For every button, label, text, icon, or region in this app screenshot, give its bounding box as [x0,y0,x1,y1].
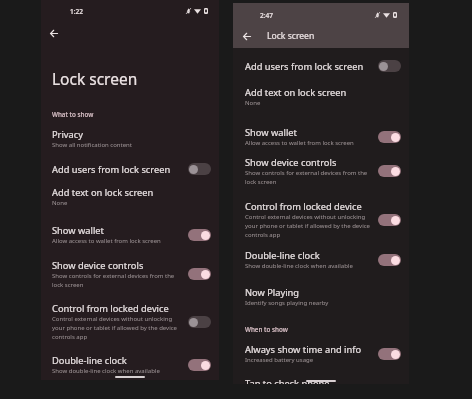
staticText: None [52,199,179,207]
staticText: Show wallet [245,126,297,139]
staticText: Add users from lock screen [52,163,171,175]
staticText: Add text on lock screen [245,86,347,99]
staticText: Now Playing [245,286,300,299]
button[interactable]: Show device controls [41,259,219,289]
staticText: Show double-line clock when available [52,367,179,375]
staticText: Always show time and info [245,343,362,356]
staticText: 2:47 [260,11,273,20]
staticText: Show device controls [245,156,337,169]
staticText: Lock screen [52,68,138,89]
button[interactable]: Show wallet [41,224,219,245]
staticText: Tap to check phone [245,377,330,384]
button[interactable]: Switch on [188,268,211,280]
staticText: Lock screen [267,30,315,42]
button[interactable]: Back [239,29,254,44]
button[interactable]: Switch on [188,359,211,371]
button[interactable]: Switch on [188,229,211,241]
staticText: Double-line clock [52,354,127,367]
button[interactable]: Add text on lock screen [41,186,219,207]
staticText: Double-line clock [245,249,320,262]
button[interactable]: Switch on [378,131,401,143]
button[interactable]: Double-line clock [233,249,409,270]
staticText: Show controls for external devices from … [52,272,179,289]
button[interactable]: Double-line clock [41,354,219,375]
button[interactable]: Always show time and info [233,343,409,364]
staticText: Show device controls [52,259,144,272]
staticText: Show controls for external devices from … [245,169,371,186]
button[interactable]: Switch off [188,163,211,175]
staticText: 1:22 [70,7,83,16]
button[interactable]: Control from locked device [41,302,219,342]
staticText: Control external devices without unlocki… [245,213,371,239]
button[interactable]: Privacy [41,128,219,149]
button[interactable]: Tap to check phone [233,377,409,384]
button[interactable]: Switch on [378,165,401,177]
staticText: None [245,99,371,107]
staticText: Identify songs playing nearby [245,299,371,307]
button[interactable]: Switch off [188,316,211,328]
button[interactable]: Back [46,26,61,41]
staticText: Add text on lock screen [52,186,154,199]
button[interactable]: Add text on lock screen [233,86,409,107]
staticText: Control external devices without unlocki… [52,315,179,341]
staticText: Show all notification content [52,141,179,149]
staticText: Increased battery usage [245,356,371,364]
button[interactable]: Add users from lock screen [233,60,409,72]
staticText: Control from locked device [245,200,362,213]
staticText: Show wallet [52,224,104,237]
button[interactable]: Add users from lock screen [41,163,219,175]
staticText: What to show [52,110,94,119]
staticText: Add users from lock screen [245,60,364,72]
staticText: Control from locked device [52,302,169,315]
staticText: Allow access to wallet from lock screen [52,237,179,245]
staticText: When to show [245,325,288,334]
button[interactable]: Switch on [378,348,401,360]
button[interactable]: Control from locked device [233,200,409,240]
button[interactable]: Show wallet [233,126,409,147]
staticText: Show double-line clock when available [245,262,371,270]
button[interactable]: Now Playing [233,286,409,307]
button[interactable]: Switch off [378,60,401,72]
staticText: Privacy [52,128,84,141]
button[interactable]: Switch on [378,254,401,266]
button[interactable]: Show device controls [233,156,409,186]
staticText: Allow access to wallet from lock screen [245,139,371,147]
button[interactable]: Switch on [378,214,401,226]
